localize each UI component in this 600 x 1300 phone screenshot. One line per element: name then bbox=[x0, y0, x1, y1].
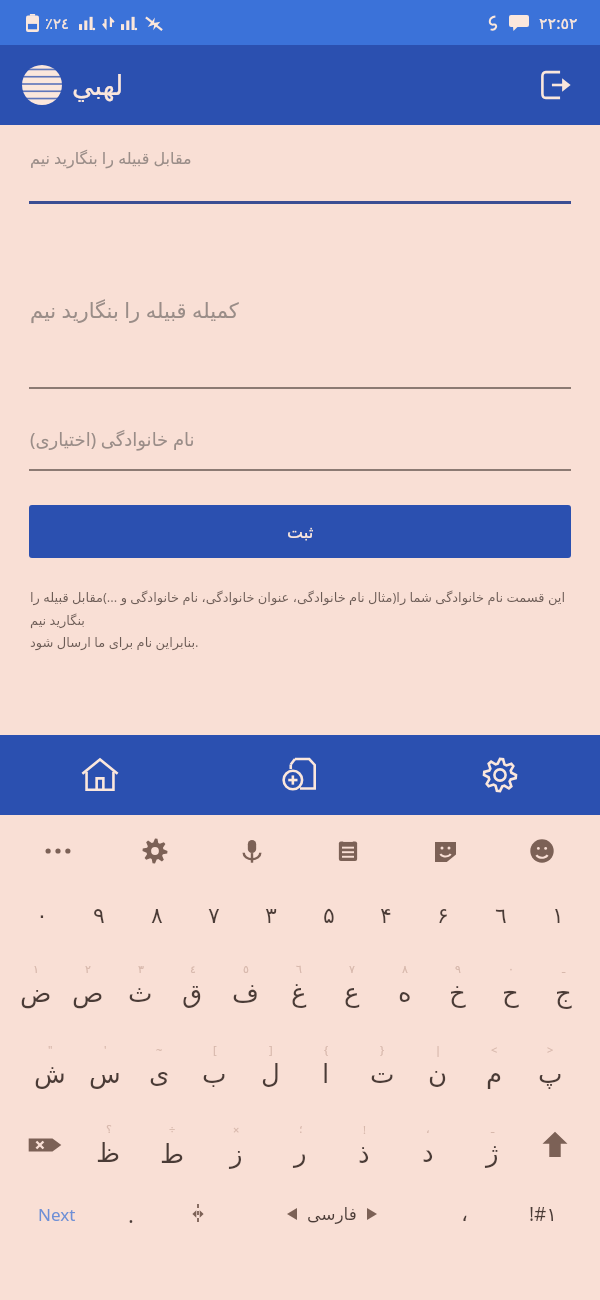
staticText: م bbox=[486, 1059, 503, 1089]
staticText: ۳ bbox=[265, 903, 277, 929]
button[interactable]: | bbox=[410, 1025, 466, 1105]
staticText: ٦ bbox=[495, 903, 507, 929]
staticText: ۸ bbox=[151, 903, 163, 929]
staticText: ٠ bbox=[508, 963, 514, 976]
button[interactable]: Settings bbox=[400, 735, 600, 815]
button[interactable]: ٩ bbox=[431, 945, 484, 1025]
button[interactable]: ۱ bbox=[10, 945, 62, 1025]
button[interactable]: ، bbox=[396, 1105, 460, 1185]
staticText: ض bbox=[20, 978, 52, 1008]
button[interactable]: ! bbox=[332, 1105, 396, 1185]
staticText: فارسی bbox=[307, 1204, 357, 1224]
button[interactable]: Move cursor bbox=[162, 1185, 234, 1243]
staticText: ظ bbox=[96, 1138, 121, 1168]
button[interactable]: Keyboard settings bbox=[116, 815, 194, 887]
staticText: ث bbox=[128, 978, 153, 1008]
button[interactable]: ؟ bbox=[76, 1105, 140, 1185]
button[interactable]: ١ bbox=[532, 887, 584, 945]
button[interactable]: Next bbox=[14, 1185, 100, 1243]
staticText: Next bbox=[38, 1203, 76, 1226]
button[interactable]: ؛ bbox=[268, 1105, 332, 1185]
button[interactable]: Home bbox=[0, 735, 200, 815]
staticText: ۶ bbox=[437, 903, 449, 929]
staticText: ٪٢٤ bbox=[45, 15, 70, 32]
staticText: ، bbox=[426, 1123, 430, 1136]
staticText: ش bbox=[34, 1059, 66, 1089]
staticText: ؛ bbox=[299, 1123, 303, 1136]
button[interactable]: ۸ bbox=[131, 887, 183, 945]
button[interactable]: More options bbox=[19, 815, 97, 887]
button[interactable]: ٦ bbox=[272, 945, 325, 1025]
staticText: کمیله قبیله را بنگارید نیم bbox=[30, 296, 239, 325]
staticText: ذ bbox=[358, 1139, 370, 1169]
button[interactable]: ۴ bbox=[360, 887, 412, 945]
staticText: ٨ bbox=[402, 963, 408, 976]
button[interactable]: ۳ bbox=[245, 887, 297, 945]
button[interactable]: ثبت bbox=[29, 505, 571, 558]
staticText: ۱ bbox=[33, 963, 39, 976]
staticText: > bbox=[547, 1042, 554, 1057]
button[interactable]: ÷ bbox=[140, 1105, 204, 1185]
staticText: ب bbox=[202, 1059, 227, 1089]
staticText: ÷ bbox=[169, 1122, 176, 1137]
button[interactable]: ۰ bbox=[16, 887, 68, 945]
button[interactable]: Clipboard bbox=[309, 815, 387, 887]
button[interactable]: ٢ bbox=[62, 945, 114, 1025]
button[interactable]: Shift bbox=[524, 1105, 586, 1185]
staticText: غ bbox=[291, 978, 307, 1008]
button[interactable]: ۵ bbox=[303, 887, 355, 945]
button[interactable]: . bbox=[100, 1185, 162, 1243]
staticText: " bbox=[48, 1042, 53, 1057]
button[interactable]: ٥ bbox=[219, 945, 272, 1025]
button[interactable]: Voice input bbox=[213, 815, 291, 887]
staticText: ۵ bbox=[323, 903, 335, 929]
button[interactable]: ٧ bbox=[325, 945, 378, 1025]
button[interactable]: ٣ bbox=[114, 945, 166, 1025]
staticText: ٦ bbox=[296, 963, 302, 976]
button[interactable]: " bbox=[22, 1025, 77, 1105]
staticText: [ bbox=[213, 1042, 217, 1057]
staticText: . bbox=[128, 1199, 134, 1229]
button[interactable]: Stickers bbox=[406, 815, 484, 887]
button[interactable]: Add document bbox=[200, 735, 400, 815]
staticText: × bbox=[233, 1122, 240, 1137]
button[interactable]: ٨ bbox=[378, 945, 431, 1025]
button[interactable]: Logout bbox=[532, 61, 580, 109]
button[interactable]: ] bbox=[242, 1025, 298, 1105]
staticText: ٩ bbox=[455, 963, 461, 976]
staticText: ط bbox=[160, 1139, 185, 1169]
button[interactable]: ۷ bbox=[188, 887, 240, 945]
button[interactable]: ٤ bbox=[166, 945, 219, 1025]
button[interactable]: > bbox=[522, 1025, 578, 1105]
button[interactable]: ـ bbox=[460, 1105, 524, 1185]
button[interactable]: Backspace bbox=[14, 1105, 76, 1185]
button[interactable]: ، bbox=[430, 1185, 500, 1243]
staticText: ن bbox=[428, 1059, 448, 1089]
staticText: پ bbox=[538, 1059, 563, 1089]
button[interactable]: [ bbox=[187, 1025, 242, 1105]
staticText: ق bbox=[182, 978, 203, 1008]
staticText: ژ bbox=[486, 1138, 499, 1168]
button[interactable]: × bbox=[204, 1105, 268, 1185]
button[interactable]: ۶ bbox=[417, 887, 469, 945]
staticText: } bbox=[380, 1042, 385, 1057]
staticText: ۴ bbox=[380, 903, 392, 929]
button[interactable]: ٠ bbox=[484, 945, 537, 1025]
staticText: ل bbox=[261, 1059, 280, 1089]
button[interactable]: !#۱ bbox=[500, 1185, 586, 1243]
button[interactable]: فارسی bbox=[234, 1185, 430, 1243]
staticText: د bbox=[422, 1138, 434, 1168]
button[interactable]: ' bbox=[77, 1025, 132, 1105]
staticText: لهبي bbox=[72, 70, 124, 101]
button[interactable]: < bbox=[466, 1025, 522, 1105]
staticText: خ bbox=[449, 978, 466, 1008]
button[interactable]: { bbox=[298, 1025, 354, 1105]
button[interactable]: } bbox=[354, 1025, 410, 1105]
button[interactable]: ~ bbox=[132, 1025, 187, 1105]
button[interactable]: Emoji bbox=[503, 815, 581, 887]
button[interactable]: ـ bbox=[537, 945, 590, 1025]
button[interactable]: ٦ bbox=[475, 887, 527, 945]
staticText: ع bbox=[344, 978, 360, 1008]
button[interactable]: ۹ bbox=[73, 887, 125, 945]
staticText: ز bbox=[230, 1139, 243, 1169]
